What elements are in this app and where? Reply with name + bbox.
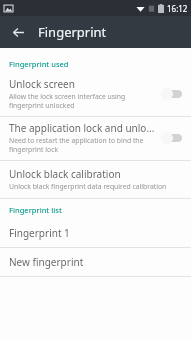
button[interactable]: New fingerprint [0, 248, 191, 276]
button[interactable]: Back [4, 18, 32, 46]
staticText: New fingerprint [9, 255, 84, 269]
staticText: Unlock screen [9, 77, 75, 91]
staticText: The application lock and unlock appli… [9, 121, 155, 135]
button[interactable]: The application lock and unlock appli… [0, 117, 191, 160]
button[interactable]: Unlock screen [0, 73, 191, 116]
button[interactable]: Toggle [159, 85, 185, 103]
staticText: Fingerprint list [9, 205, 62, 215]
staticText: Fingerprint used [9, 59, 69, 69]
staticText: 16:12 [167, 3, 188, 14]
staticText: Need to restart the application to bind … [9, 136, 155, 154]
button[interactable]: Fingerprint 1 [0, 219, 191, 247]
staticText: Unlock black fingerprint data required c… [9, 182, 167, 191]
staticText: Unlock black calibration [9, 167, 121, 181]
button[interactable]: Toggle [159, 129, 185, 147]
staticText: Allow the lock screen interface using fi… [9, 92, 155, 110]
staticText: Fingerprint 1 [9, 226, 70, 240]
staticText: Fingerprint [38, 23, 107, 41]
button[interactable]: Unlock black calibration [0, 161, 191, 198]
